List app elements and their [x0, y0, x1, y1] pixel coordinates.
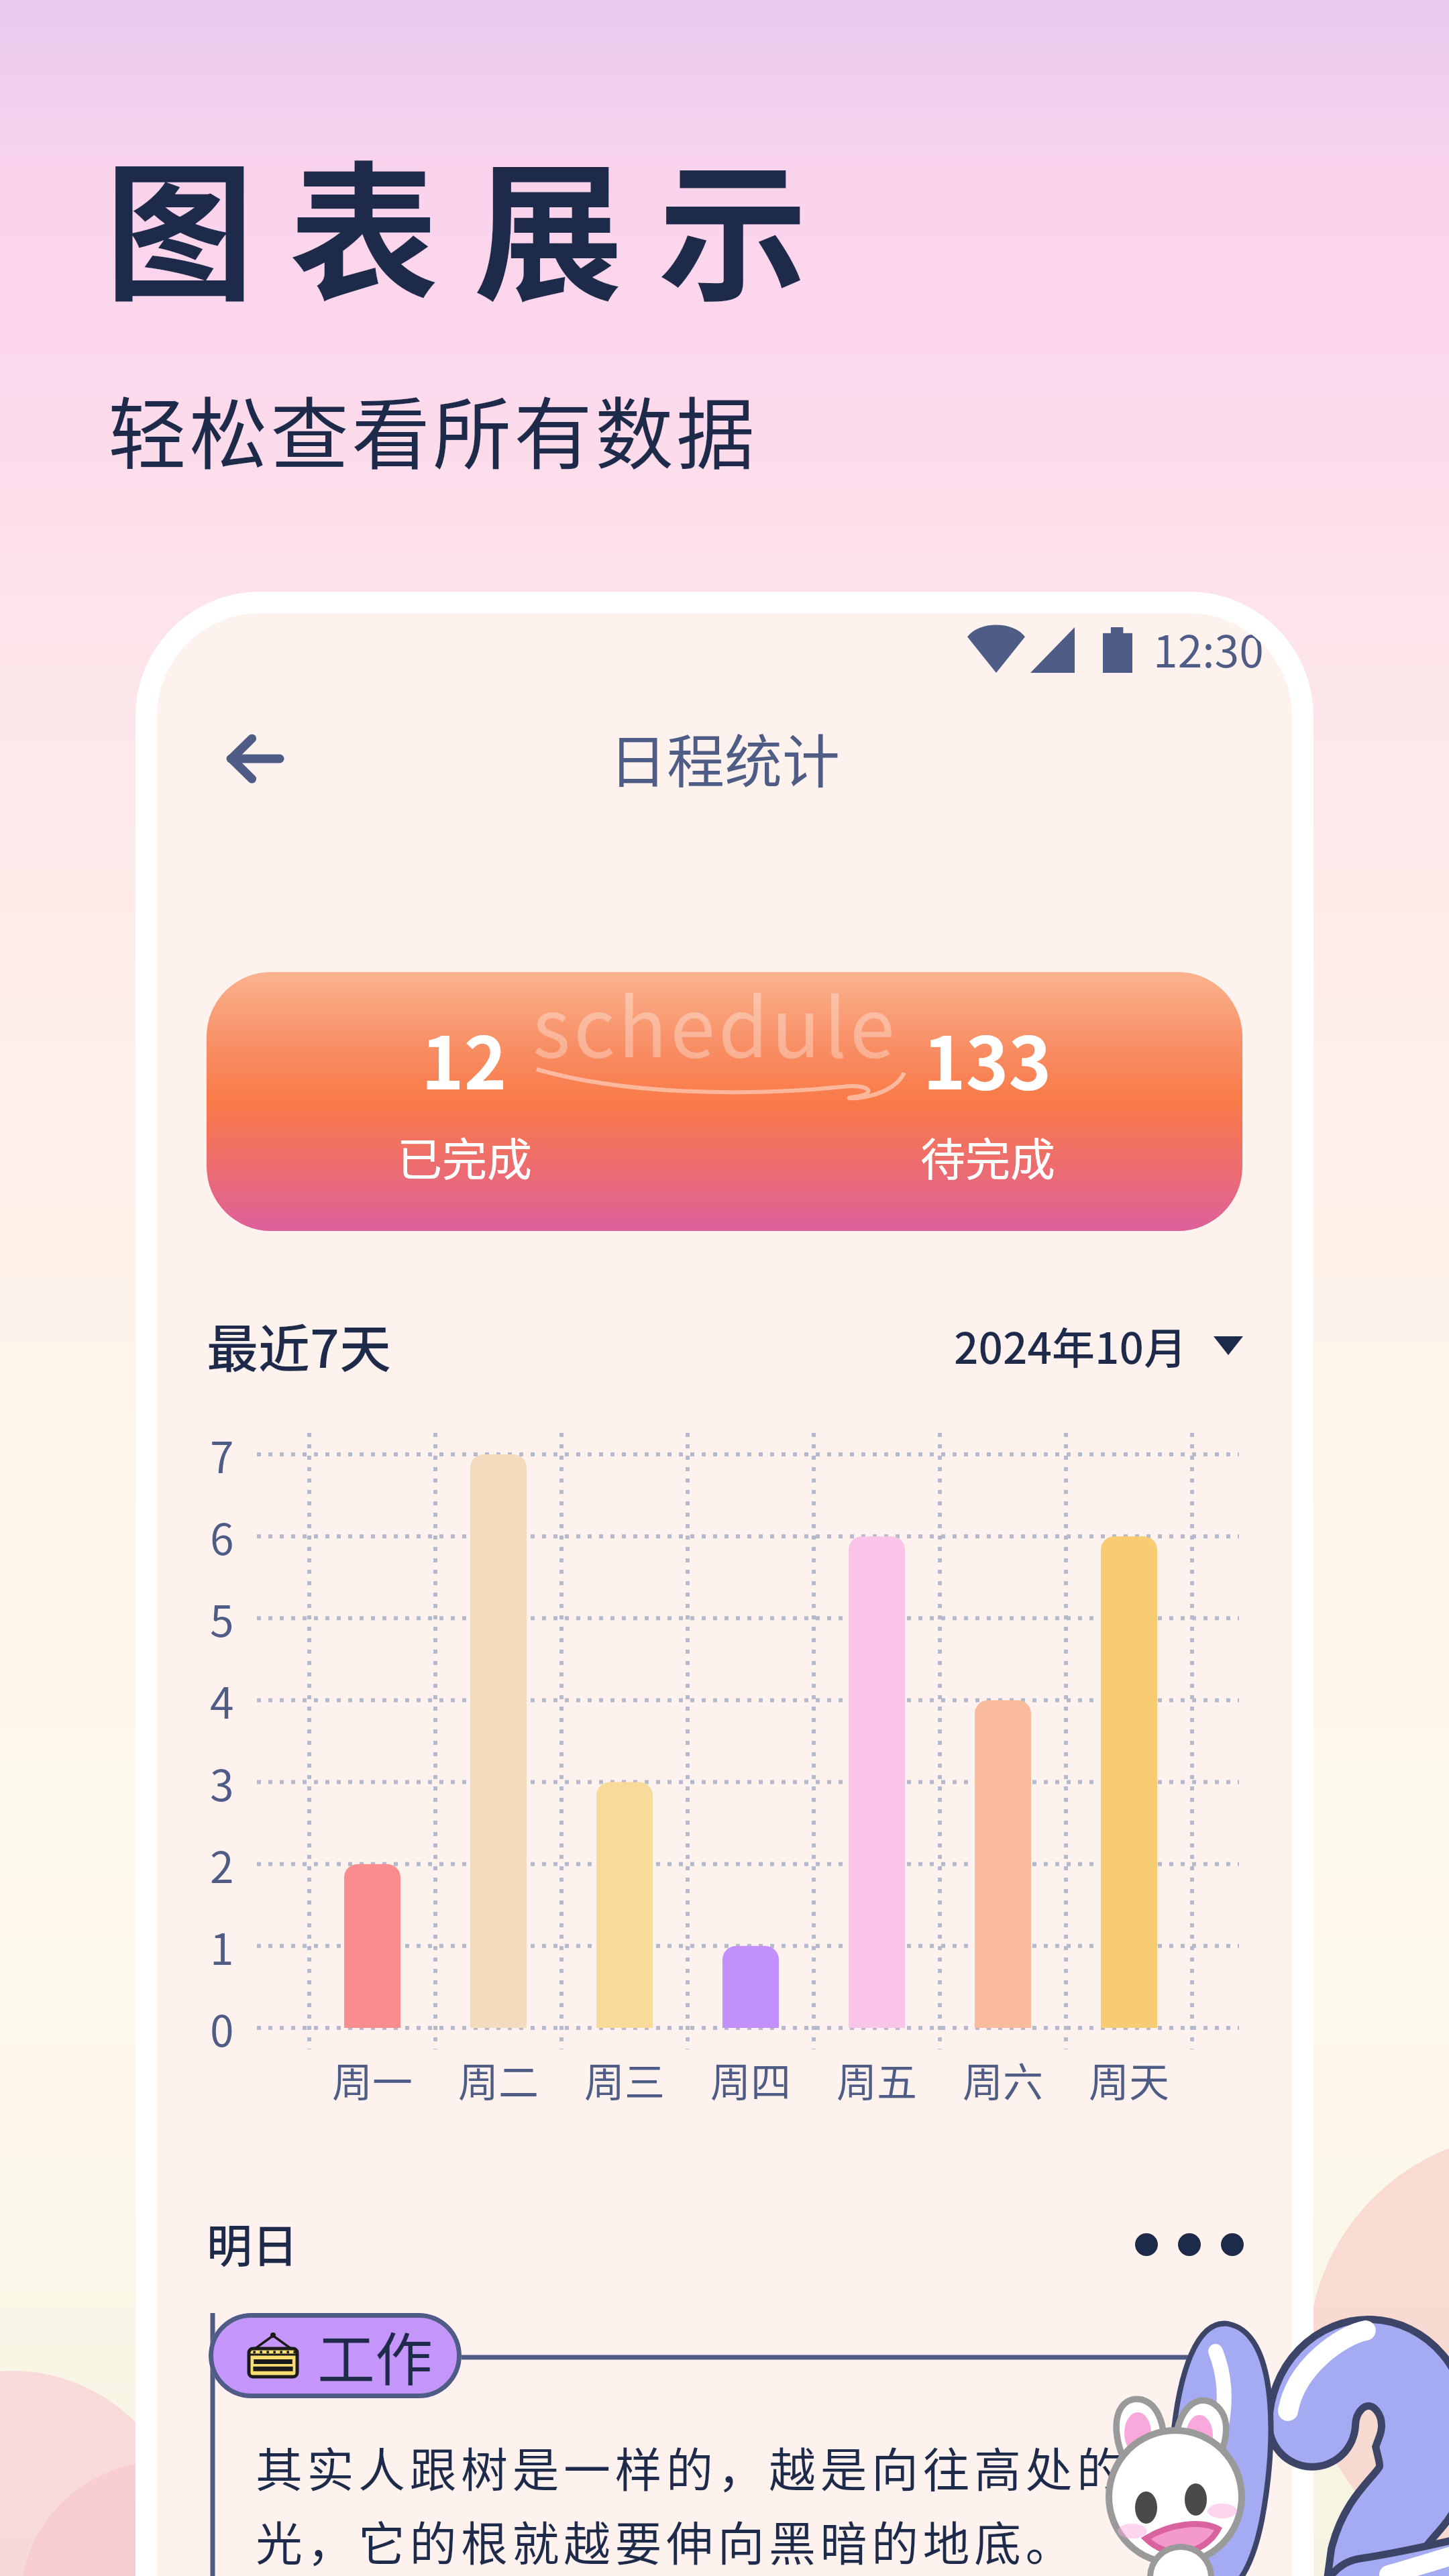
- staticText: 周四: [710, 2050, 791, 2108]
- button[interactable]: Back: [201, 716, 305, 800]
- staticText: 周五: [837, 2050, 917, 2108]
- staticText: 6: [210, 1505, 234, 1568]
- staticText: 最近7天: [207, 1308, 391, 1383]
- button[interactable]: 工作: [209, 2313, 462, 2398]
- staticText: 133: [923, 1006, 1052, 1110]
- staticText: 2: [210, 1833, 234, 1896]
- staticText: 工作: [317, 2314, 433, 2398]
- button[interactable]: More options: [1135, 2226, 1244, 2263]
- staticText: 7: [210, 1424, 234, 1486]
- staticText: 明日: [207, 2210, 299, 2275]
- staticText: 其实人跟树是一样的，越是向往高处的: [256, 2433, 1128, 2501]
- button[interactable]: 2024年10月: [954, 1314, 1243, 1377]
- staticText: 4: [210, 1669, 234, 1731]
- staticText: 周天: [1089, 2050, 1169, 2108]
- staticText: 日程统计: [609, 716, 840, 800]
- staticText: 周二: [458, 2050, 539, 2108]
- staticText: 待完成: [920, 1124, 1055, 1189]
- staticText: 已完成: [397, 1124, 532, 1189]
- staticText: 周三: [584, 2050, 665, 2108]
- staticText: 3: [210, 1752, 234, 1814]
- staticText: 光，它的根就越要伸向黑暗的地底。: [256, 2507, 1077, 2575]
- staticText: 1: [210, 1915, 234, 1978]
- staticText: 5: [210, 1587, 234, 1650]
- staticText: schedule: [533, 972, 898, 1081]
- staticText: 周一: [332, 2050, 413, 2108]
- button[interactable]: schedule: [207, 972, 1242, 1231]
- staticText: 轻松查看所有数据: [108, 372, 758, 485]
- staticText: 周六: [963, 2050, 1043, 2108]
- staticText: 12: [421, 1006, 507, 1110]
- staticText: 12:30: [1153, 616, 1264, 680]
- staticText: 图表展示: [105, 114, 843, 331]
- staticText: 0: [210, 1997, 234, 2059]
- staticText: 2024年10月: [954, 1314, 1187, 1377]
